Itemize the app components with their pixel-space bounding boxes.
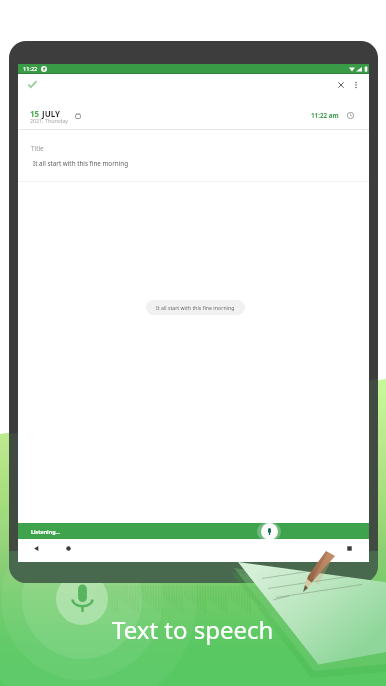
button[interactable]: Home	[62, 542, 75, 555]
button[interactable]: Close	[333, 77, 349, 93]
staticText: Title	[31, 144, 44, 153]
button[interactable]: Microphone	[257, 523, 281, 540]
staticText: It all start with this fine morning	[156, 304, 235, 311]
button[interactable]: It all start with this fine morning	[146, 300, 245, 315]
button[interactable]: Select time	[345, 110, 356, 121]
button[interactable]: Save note	[25, 77, 41, 93]
button[interactable]: Select date	[72, 110, 83, 121]
staticText: Text to speech	[112, 613, 274, 646]
staticText: 15	[30, 108, 40, 119]
staticText: Listening...	[31, 528, 60, 535]
button[interactable]: More options	[348, 77, 364, 93]
staticText: 11:22	[23, 65, 38, 73]
staticText: It all start with this fine morning	[33, 159, 129, 168]
button[interactable]: Recent apps	[343, 542, 356, 555]
staticText: 2021, Thursday	[30, 117, 69, 124]
button[interactable]: Back	[30, 542, 43, 555]
staticText: 11:22 am	[311, 111, 339, 120]
staticText: JULY	[40, 108, 61, 119]
